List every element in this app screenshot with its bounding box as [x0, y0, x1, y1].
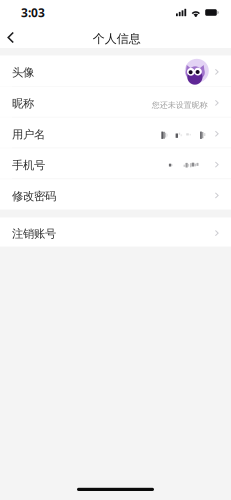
- staticText: 注销账号: [12, 227, 56, 241]
- button[interactable]: 修改密码: [0, 179, 231, 209]
- button[interactable]: 头像: [0, 55, 231, 86]
- staticText: 修改密码: [12, 189, 56, 203]
- staticText: 手机号: [12, 158, 45, 172]
- staticText: 3:03: [21, 4, 45, 21]
- staticText: 您还未设置昵称: [152, 100, 208, 110]
- staticText: 个人信息: [93, 31, 141, 46]
- staticText: 昵称: [12, 96, 34, 111]
- staticText: 头像: [12, 65, 34, 80]
- button[interactable]: 用户名: [0, 117, 231, 148]
- staticText: 用户名: [12, 127, 45, 142]
- button[interactable]: Back: [0, 24, 34, 48]
- button[interactable]: 注销账号: [0, 217, 231, 246]
- button[interactable]: 昵称: [0, 87, 231, 117]
- button[interactable]: 手机号: [0, 148, 231, 179]
